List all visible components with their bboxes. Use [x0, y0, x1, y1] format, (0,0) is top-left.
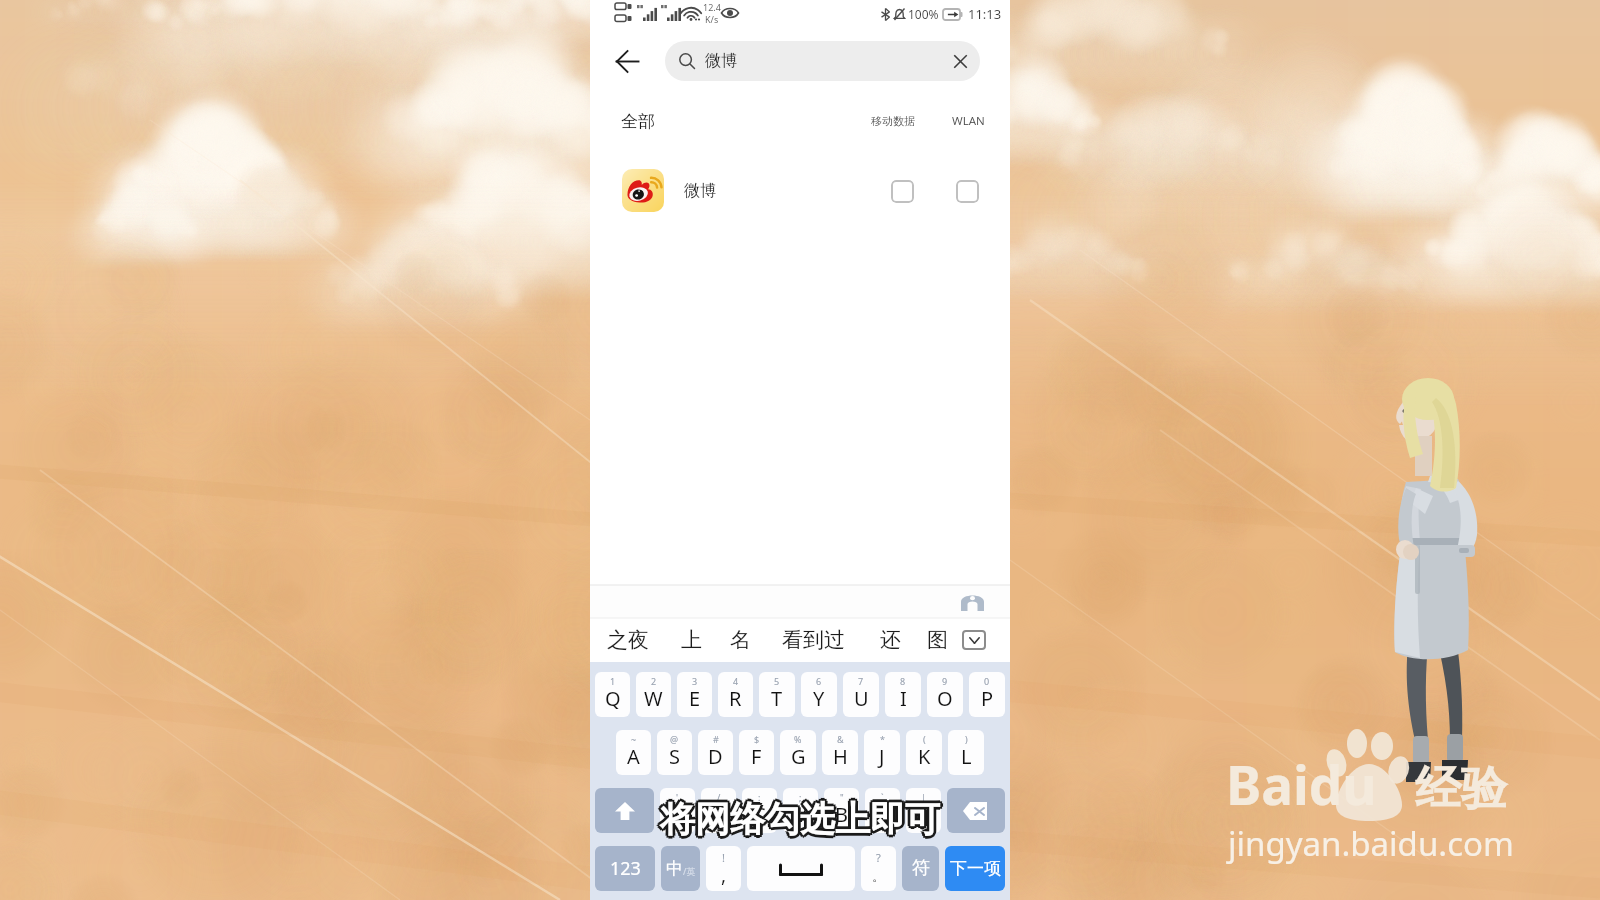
staticText: N [875, 801, 891, 828]
staticText: 将网络勾选上即可 [660, 794, 940, 838]
button[interactable]: ; [783, 788, 818, 833]
staticText: 7 [858, 675, 864, 687]
staticText: V [795, 801, 807, 828]
button[interactable]: ' [660, 788, 695, 833]
staticText: C [753, 801, 766, 828]
button[interactable]: Space [747, 846, 855, 891]
staticText: # [713, 733, 719, 745]
button[interactable]: 1 [595, 672, 630, 717]
staticText: 名 [730, 627, 751, 653]
button[interactable]: WLAN [950, 113, 987, 129]
staticText: /英 [683, 865, 696, 877]
staticText: 全部 [621, 111, 655, 132]
staticText: 中 [666, 858, 683, 879]
button[interactable]: % [780, 730, 816, 775]
button[interactable]: 微博 [590, 160, 1010, 222]
button[interactable]: 微博 [665, 41, 980, 81]
staticText: 8 [900, 675, 906, 687]
staticText: 微博 [684, 181, 716, 201]
button[interactable]: Toggle network permission [891, 180, 914, 203]
staticText: 将网络勾选上即可 [660, 800, 940, 844]
staticText: " [840, 791, 844, 803]
staticText: T [771, 685, 783, 712]
button[interactable]: ( [906, 730, 942, 775]
button[interactable]: 2 [636, 672, 671, 717]
button[interactable]: 图 [919, 618, 956, 662]
staticText: WLAN [952, 113, 985, 129]
staticText: @ [670, 733, 679, 745]
button[interactable]: Shift [595, 788, 654, 833]
button[interactable]: | [906, 788, 941, 833]
staticText: 将网络勾选上即可 [663, 797, 943, 841]
staticText: 9 [942, 675, 948, 687]
staticText: $ [754, 733, 760, 745]
staticText: , [721, 862, 727, 888]
button[interactable]: Back [590, 41, 665, 81]
button[interactable]: 0 [969, 672, 1005, 717]
button[interactable]: Toggle network permission [956, 180, 979, 203]
button[interactable]: / [701, 788, 736, 833]
button[interactable]: 4 [718, 672, 753, 717]
staticText: A [627, 743, 640, 770]
button[interactable]: ~ [616, 730, 651, 775]
staticText: ? [876, 850, 881, 865]
button[interactable]: ) [948, 730, 984, 775]
button[interactable]: 7 [843, 672, 879, 717]
staticText: 将网络勾选上即可 [658, 795, 938, 839]
button[interactable]: 看到过 [774, 618, 853, 662]
button[interactable]: 6 [801, 672, 837, 717]
button[interactable]: Backspace [947, 788, 1005, 833]
staticText: Z [672, 801, 684, 828]
button[interactable]: : [742, 788, 777, 833]
button[interactable]: 名 [722, 618, 759, 662]
staticText: E [689, 685, 701, 712]
button[interactable]: 还 [872, 618, 909, 662]
staticText: P [981, 685, 994, 712]
staticText: 12.4 [703, 1, 721, 13]
staticText: 看到过 [782, 627, 845, 653]
staticText: 2 [651, 675, 657, 687]
button[interactable]: 中 [661, 846, 700, 891]
button[interactable]: 符 [902, 846, 939, 891]
button[interactable]: 9 [927, 672, 963, 717]
staticText: 下一项 [950, 858, 1001, 879]
button[interactable]: $ [739, 730, 774, 775]
staticText: K [918, 743, 931, 770]
button[interactable]: 8 [885, 672, 921, 717]
button[interactable]: 之夜 [599, 618, 657, 662]
staticText: M [914, 801, 933, 828]
button[interactable]: & [822, 730, 858, 775]
button[interactable]: 123 [595, 846, 655, 891]
staticText: 将网络勾选上即可 [658, 799, 938, 843]
staticText: Q [605, 685, 621, 712]
staticText: 移动数据 [871, 114, 915, 128]
button[interactable]: 移动数据 [869, 114, 917, 128]
button[interactable]: 3 [677, 672, 712, 717]
staticText: 将网络勾选上即可 [662, 795, 942, 839]
button[interactable]: 下一项 [945, 846, 1005, 891]
staticText: B [835, 801, 848, 828]
staticText: ` [881, 791, 884, 803]
staticText: : [758, 791, 761, 803]
staticText: S [669, 743, 680, 770]
button[interactable]: ! [706, 846, 741, 891]
staticText: jingyan.baidu.com [1228, 821, 1514, 866]
button[interactable]: ` [865, 788, 900, 833]
staticText: 微博 [705, 51, 737, 71]
button[interactable]: Clear [940, 41, 980, 81]
button[interactable]: ? [861, 846, 896, 891]
staticText: ! [722, 850, 725, 865]
staticText: 11:13 [968, 5, 1002, 23]
button[interactable]: # [698, 730, 733, 775]
staticText: G [791, 743, 806, 770]
staticText: 将网络勾选上即可 [660, 797, 940, 841]
button[interactable]: * [864, 730, 900, 775]
button[interactable]: 上 [673, 618, 710, 662]
staticText: R [729, 685, 742, 712]
button[interactable]: @ [657, 730, 692, 775]
staticText: U [854, 685, 869, 712]
button[interactable]: 5 [759, 672, 795, 717]
button[interactable]: Expand candidates [962, 630, 986, 650]
staticText: ; [799, 791, 802, 803]
button[interactable]: " [824, 788, 859, 833]
